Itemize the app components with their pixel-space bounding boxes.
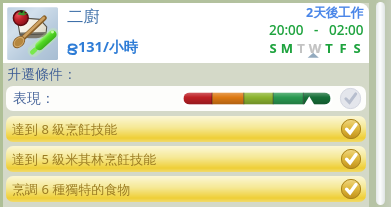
staticText: 升遷條件： [7, 66, 77, 84]
staticText: 烹調 6 種獨特的食物 [12, 180, 131, 198]
staticText: 131/小時 [78, 36, 138, 56]
button[interactable]: 烹調 6 種獨特的食物 [6, 176, 366, 202]
button[interactable]: Scroll [376, 2, 385, 205]
staticText: 達到 5 級米其林烹飪技能 [12, 150, 157, 168]
button[interactable]: 達到 8 級烹飪技能 [6, 116, 366, 142]
staticText: S [266, 39, 280, 57]
staticText: S [350, 39, 364, 57]
staticText: 達到 8 級烹飪技能 [12, 120, 118, 138]
staticText: 20:00 - 02:00 [269, 21, 364, 39]
staticText: F [336, 39, 350, 57]
staticText: W [308, 39, 322, 57]
staticText: T [294, 39, 308, 57]
staticText: T [322, 39, 336, 57]
button[interactable]: 達到 5 級米其林烹飪技能 [6, 146, 366, 172]
staticText: 表現： [13, 90, 55, 108]
staticText: M [280, 39, 294, 57]
staticText: 二廚 [67, 6, 100, 27]
staticText: 2天後工作 [306, 4, 364, 21]
button[interactable]: 表現： [6, 86, 366, 111]
